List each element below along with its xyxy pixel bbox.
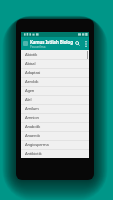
button[interactable]: Amnion	[21, 113, 89, 122]
button[interactable]: Agen	[21, 86, 89, 95]
staticText: Alel	[25, 97, 32, 103]
staticText: Abiotik	[25, 52, 38, 58]
button[interactable]: Anabolik	[21, 122, 89, 131]
button[interactable]: Aerobik	[21, 77, 89, 86]
button[interactable]: Adaptasi	[21, 68, 89, 77]
staticText: Abisal	[25, 61, 36, 67]
button[interactable]: App icon	[23, 41, 28, 46]
button[interactable]: More options	[82, 37, 89, 50]
staticText: Pascarilma	[30, 45, 46, 49]
staticText: Angiosperma	[25, 142, 49, 148]
staticText: Amilum	[25, 106, 39, 112]
button[interactable]: Abiotik	[21, 50, 89, 59]
staticText: Amnion	[25, 115, 39, 121]
button[interactable]: Alel	[21, 95, 89, 104]
button[interactable]: Antibiotik	[21, 149, 89, 158]
staticText: Antibiotik	[25, 151, 42, 157]
button[interactable]: Amilum	[21, 104, 89, 113]
button[interactable]: Angiosperma	[21, 140, 89, 149]
staticText: Anaerob	[25, 133, 40, 139]
button[interactable]: Abisal	[21, 59, 89, 68]
staticText: Kamus Istilah Biologi	[30, 39, 73, 45]
staticText: Aerobik	[25, 79, 39, 85]
staticText: Anabolik	[25, 124, 41, 130]
staticText: Agen	[25, 88, 35, 94]
button[interactable]: Search	[73, 37, 82, 50]
button[interactable]: Anaerob	[21, 131, 89, 140]
staticText: Adaptasi	[25, 70, 41, 76]
